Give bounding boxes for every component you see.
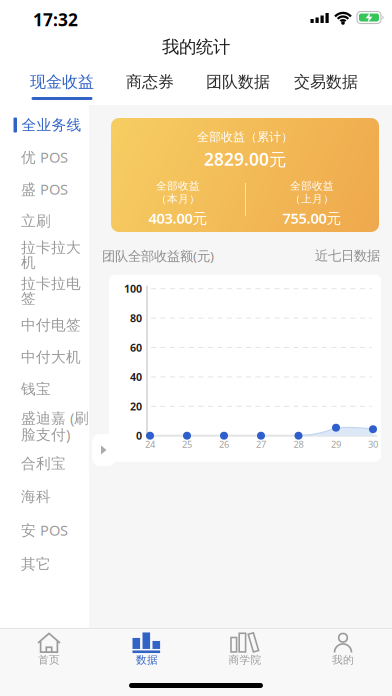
- button[interactable]: 拉卡拉电: [0, 273, 89, 309]
- staticText: 我的: [332, 653, 354, 666]
- staticText: 40: [130, 370, 142, 384]
- staticText: 中付大机: [21, 348, 81, 366]
- staticText: 优 POS: [21, 147, 68, 167]
- staticText: 拉卡拉大: [21, 238, 81, 256]
- button[interactable]: 盛 POS: [0, 173, 89, 205]
- staticText: 商学院: [228, 653, 261, 666]
- staticText: 安 POS: [21, 520, 68, 540]
- staticText: 全部收益: [156, 179, 200, 192]
- button[interactable]: 数据: [98, 623, 196, 675]
- staticText: 20: [130, 399, 142, 413]
- button[interactable]: 现金收益: [18, 64, 106, 100]
- staticText: 我的统计: [162, 36, 230, 58]
- staticText: 立刷: [21, 212, 51, 230]
- staticText: 脸支付): [21, 424, 70, 444]
- staticText: 28: [293, 438, 303, 450]
- staticText: 29: [331, 438, 341, 450]
- staticText: 机: [21, 253, 36, 271]
- staticText: 100: [124, 282, 142, 296]
- button[interactable]: 钱宝: [0, 373, 89, 405]
- staticText: （上月）: [290, 192, 334, 205]
- staticText: 全部收益（累计）: [197, 130, 293, 144]
- staticText: 交易数据: [294, 72, 358, 92]
- staticText: 中付电签: [21, 316, 81, 334]
- staticText: 24: [145, 438, 155, 450]
- staticText: 海科: [21, 487, 51, 505]
- staticText: 团队全部收益额(元): [102, 247, 214, 265]
- staticText: 403.00元: [148, 208, 207, 228]
- staticText: 全部收益: [290, 179, 334, 192]
- staticText: 合利宝: [21, 454, 66, 472]
- button[interactable]: 团队数据: [194, 64, 282, 100]
- button[interactable]: 其它: [0, 547, 89, 581]
- button[interactable]: 中付电签: [0, 309, 89, 341]
- staticText: 拉卡拉电: [21, 274, 81, 292]
- button[interactable]: 中付大机: [0, 341, 89, 373]
- staticText: 现金收益: [30, 72, 94, 92]
- staticText: 30: [368, 438, 378, 450]
- staticText: 26: [219, 438, 229, 450]
- button[interactable]: 立刷: [0, 205, 89, 237]
- staticText: （本月）: [156, 192, 200, 205]
- button[interactable]: 优 POS: [0, 141, 89, 173]
- button[interactable]: 海科: [0, 480, 89, 513]
- button[interactable]: 合利宝: [0, 447, 89, 480]
- staticText: 签: [21, 289, 36, 307]
- staticText: 17:32: [33, 8, 78, 31]
- button[interactable]: 安 POS: [0, 513, 89, 547]
- staticText: 商态券: [126, 72, 174, 92]
- staticText: 27: [256, 438, 266, 450]
- button[interactable]: 我的: [294, 623, 392, 675]
- staticText: 80: [130, 311, 142, 325]
- staticText: 首页: [38, 653, 60, 666]
- button[interactable]: 交易数据: [282, 64, 370, 100]
- staticText: 盛 POS: [21, 179, 68, 199]
- button[interactable]: 展开: [92, 434, 116, 466]
- staticText: 数据: [136, 653, 158, 666]
- staticText: 60: [130, 340, 142, 355]
- button[interactable]: 全业务线: [0, 109, 89, 141]
- button[interactable]: 首页: [0, 623, 98, 675]
- button[interactable]: 商学院: [196, 623, 294, 675]
- staticText: 近七日数据: [315, 248, 380, 264]
- button[interactable]: 拉卡拉大: [0, 237, 89, 273]
- staticText: 全业务线: [21, 116, 81, 134]
- staticText: 755.00元: [282, 208, 341, 228]
- staticText: 25: [182, 438, 192, 450]
- staticText: 0: [136, 429, 142, 443]
- staticText: 钱宝: [21, 380, 51, 398]
- button[interactable]: 盛迪嘉 (刷: [0, 405, 89, 447]
- staticText: 团队数据: [206, 72, 270, 92]
- staticText: 盛迪嘉 (刷: [21, 408, 89, 427]
- staticText: 其它: [21, 555, 51, 573]
- staticText: 2829.00元: [204, 147, 286, 170]
- button[interactable]: 商态券: [106, 64, 194, 100]
